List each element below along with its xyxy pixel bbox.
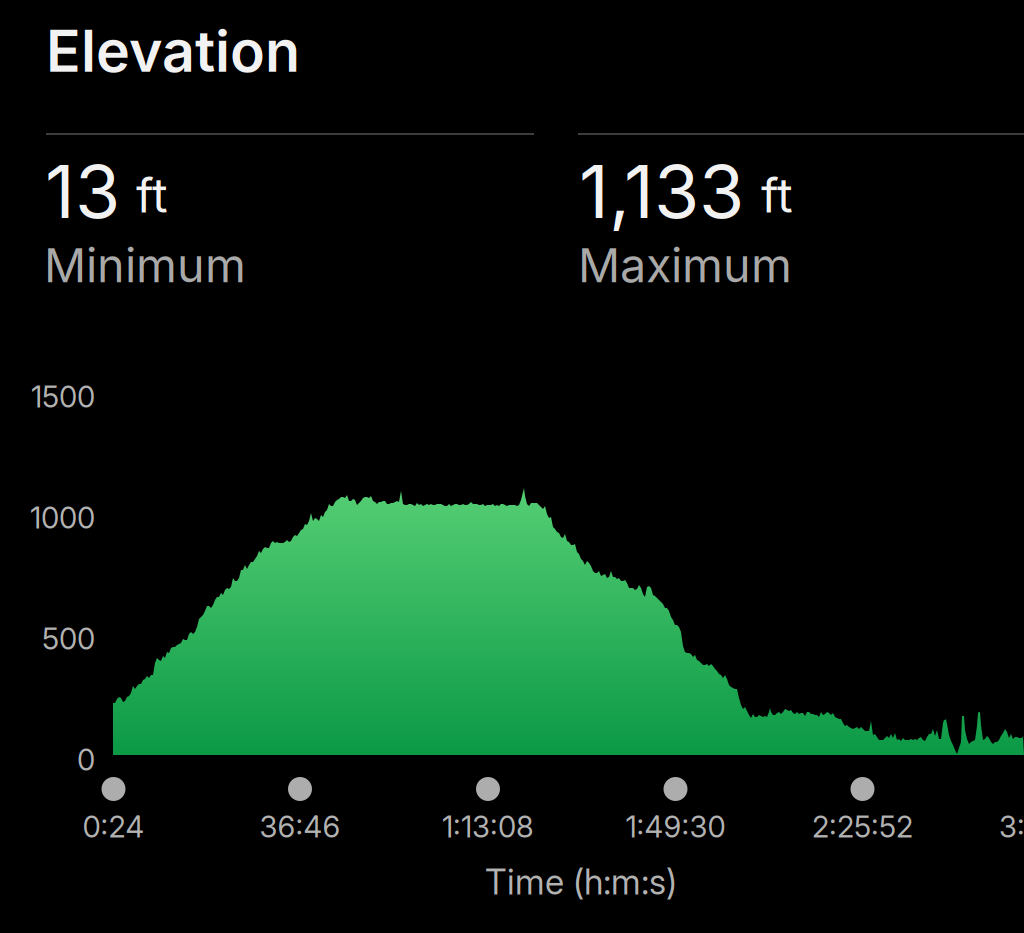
staticText: 1,133 (579, 147, 744, 236)
button[interactable]: Elevation (46, 13, 346, 89)
staticText: Elevation (46, 16, 300, 86)
staticText: 1:49:30 (625, 809, 725, 844)
staticText: 500 (42, 621, 95, 656)
button[interactable]: 13 (44, 140, 490, 300)
staticText: 3: (999, 809, 1024, 844)
staticText: Minimum (44, 237, 246, 293)
staticText: 1:13:08 (442, 809, 534, 844)
staticText: 0:24 (82, 809, 144, 844)
staticText: Maximum (578, 237, 792, 293)
staticText: 1000 (30, 500, 95, 535)
staticText: 0 (77, 742, 95, 777)
staticText: 2:25:52 (812, 809, 913, 844)
staticText: 13 (45, 147, 120, 236)
staticText: ft (761, 166, 793, 224)
staticText: 36:46 (259, 809, 340, 844)
staticText: Time (h:m:s) (485, 861, 677, 903)
staticText: ft (136, 166, 168, 224)
button[interactable]: 1,133 (578, 140, 1024, 300)
button[interactable]: Elevation chart (0, 340, 1024, 900)
staticText: 1500 (31, 379, 95, 414)
